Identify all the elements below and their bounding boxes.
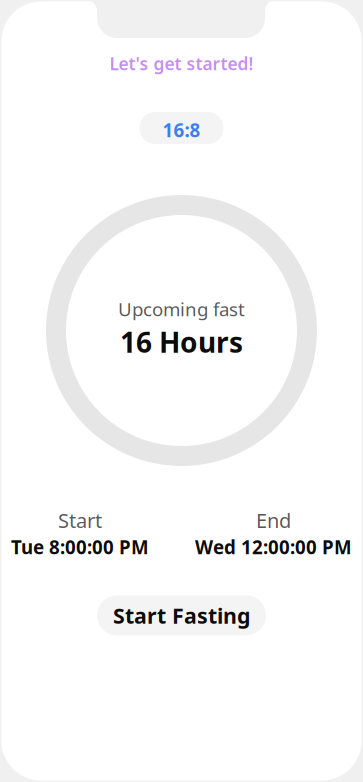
staticText: 16 Hours	[120, 323, 243, 360]
staticText: Start Fasting	[113, 601, 250, 629]
staticText: Start	[58, 507, 102, 534]
button[interactable]: Fasting plan 16:8	[139, 112, 223, 144]
button[interactable]: Start Fasting	[97, 595, 266, 635]
staticText: Let's get started!	[109, 52, 253, 75]
staticText: Wed 12:00:00 PM	[195, 535, 352, 559]
staticText: 16:8	[162, 118, 200, 142]
staticText: Tue 8:00:00 PM	[11, 535, 149, 559]
staticText: End	[256, 507, 291, 534]
staticText: Upcoming fast	[118, 296, 245, 321]
